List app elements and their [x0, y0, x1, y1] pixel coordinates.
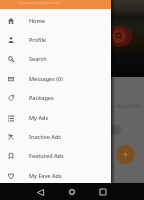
staticText: Home [29, 17, 45, 24]
staticText: aby.capitalcity@gmail.com [18, 0, 61, 5]
staticText: My Ads [29, 114, 49, 121]
button[interactable]: Recent apps [96, 185, 110, 199]
button[interactable]: Home [65, 185, 79, 199]
button[interactable]: Inactive Ads [0, 127, 111, 146]
button[interactable]: Packages [0, 88, 111, 107]
button[interactable]: Home [0, 11, 111, 30]
staticText: Packages [29, 94, 54, 101]
button[interactable]: My Ads [0, 108, 111, 127]
button[interactable]: Messages (0) [0, 69, 111, 88]
button[interactable]: Search [0, 49, 111, 68]
staticText: Search [29, 55, 47, 62]
staticText: Profile [29, 36, 47, 43]
button[interactable]: My Fave Ads [0, 166, 111, 185]
staticText: Featured Ads [29, 152, 64, 159]
staticText: My Fave Ads [29, 172, 62, 179]
button[interactable]: Add new ad [116, 145, 135, 164]
button[interactable]: Search [112, 29, 126, 43]
button[interactable]: Back [33, 185, 47, 199]
staticText: Cars Available [104, 102, 141, 109]
staticText: Inactive Ads [29, 133, 62, 140]
staticText: Messages (0) [29, 75, 63, 82]
button[interactable]: Profile [0, 30, 111, 49]
button[interactable]: Featured Ads [0, 146, 111, 165]
